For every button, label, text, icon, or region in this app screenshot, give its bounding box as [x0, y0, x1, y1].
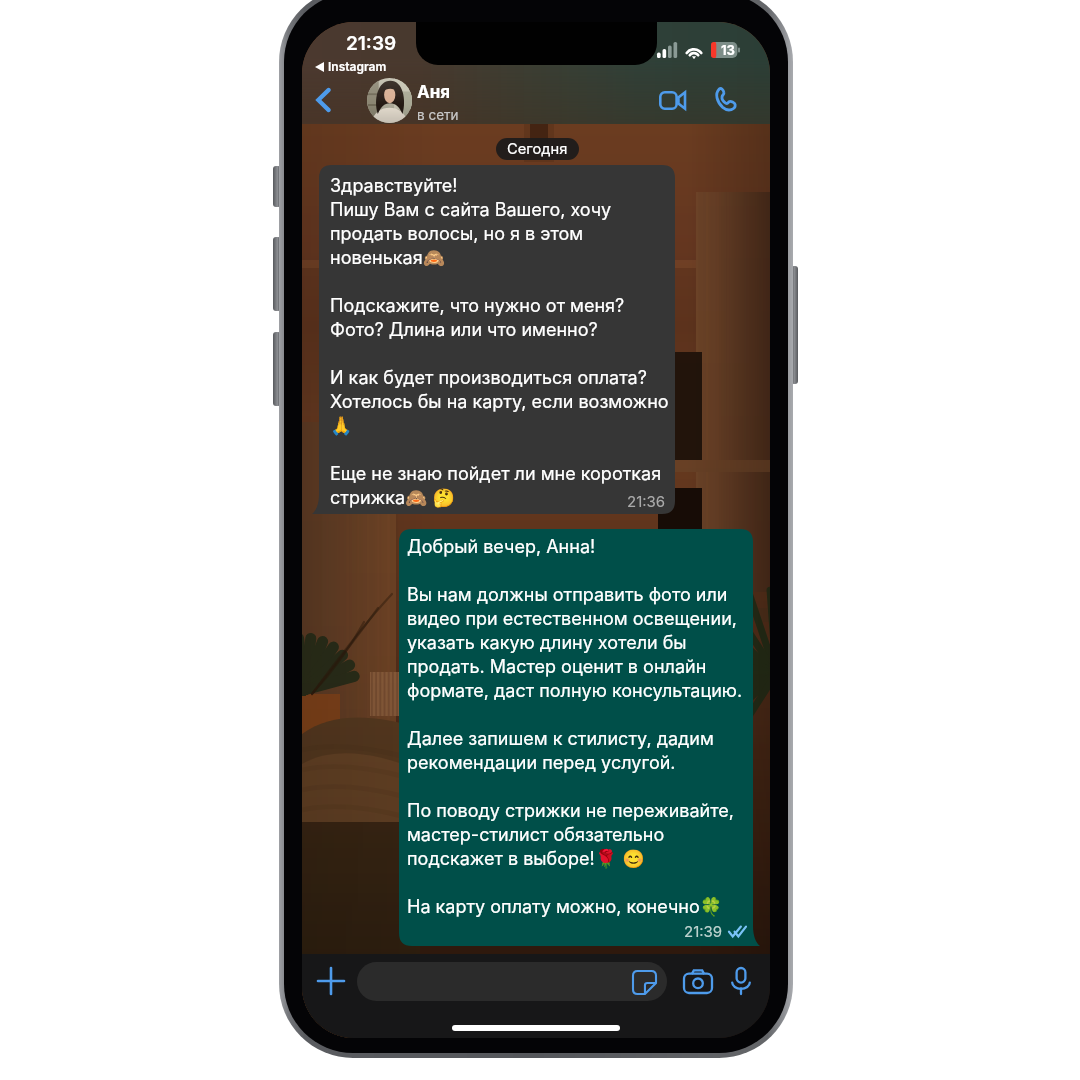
staticText: продать волосы, но я в этом [330, 223, 584, 245]
staticText: новенькая🙈 [330, 247, 446, 269]
button[interactable]: Profile photo [367, 78, 412, 123]
staticText: 21:39 [346, 32, 397, 55]
staticText: продать. Мастер оценит в онлайн [407, 656, 707, 678]
staticText: стрижка🙈 🤔 [330, 487, 455, 509]
staticText: И как будет производиться оплата? [330, 367, 647, 389]
staticText: 🙏 [330, 415, 353, 436]
staticText: указать какую длину хотели бы [407, 632, 687, 654]
staticText: Далее запишем к стилисту, дадим [407, 728, 714, 750]
staticText: Подскажите, что нужно от меня? [330, 295, 625, 317]
staticText: Instagram [328, 59, 387, 74]
staticText: формате, даст полную консультацию. [407, 680, 743, 702]
button[interactable]: Attach [310, 960, 352, 1002]
staticText: 21:39 [684, 922, 723, 940]
staticText: Сегодня [507, 140, 568, 158]
staticText: Аня [417, 82, 451, 103]
staticText: Еще не знаю пойдет ли мне короткая [330, 463, 662, 485]
button[interactable]: Voice message [720, 960, 762, 1002]
staticText: 21:36 [627, 492, 666, 510]
button[interactable]: Back [306, 78, 340, 122]
button[interactable]: Voice call [702, 76, 748, 122]
button[interactable]: Stickers [630, 968, 658, 996]
staticText: На карту оплату можно, конечно🍀 [407, 896, 723, 918]
staticText: подскажет в выборе!🌹 😊 [407, 848, 645, 870]
staticText: видео при естественном освещении, [407, 608, 737, 630]
button[interactable]: Camera [677, 960, 719, 1002]
staticText: мастер-стилист обязательно [407, 824, 665, 846]
button[interactable]: Video call [649, 77, 695, 123]
staticText: в сети [417, 107, 459, 123]
staticText: Фото? Длина или что именно? [330, 319, 598, 341]
staticText: Вы нам должны отправить фото или [407, 584, 728, 606]
staticText: Хотелось бы на карту, если возможно [330, 391, 669, 413]
staticText: Добрый вечер, Анна! [407, 536, 596, 558]
staticText: 13 [721, 42, 735, 58]
staticText: По поводу стрижки не переживайте, [407, 800, 735, 822]
staticText: Здравствуйте! [330, 175, 458, 197]
staticText: Пишу Вам с сайта Вашего, хочу [330, 199, 612, 221]
button[interactable]: Stickers [357, 962, 667, 1001]
staticText: рекомендации перед услугой. [407, 752, 676, 774]
